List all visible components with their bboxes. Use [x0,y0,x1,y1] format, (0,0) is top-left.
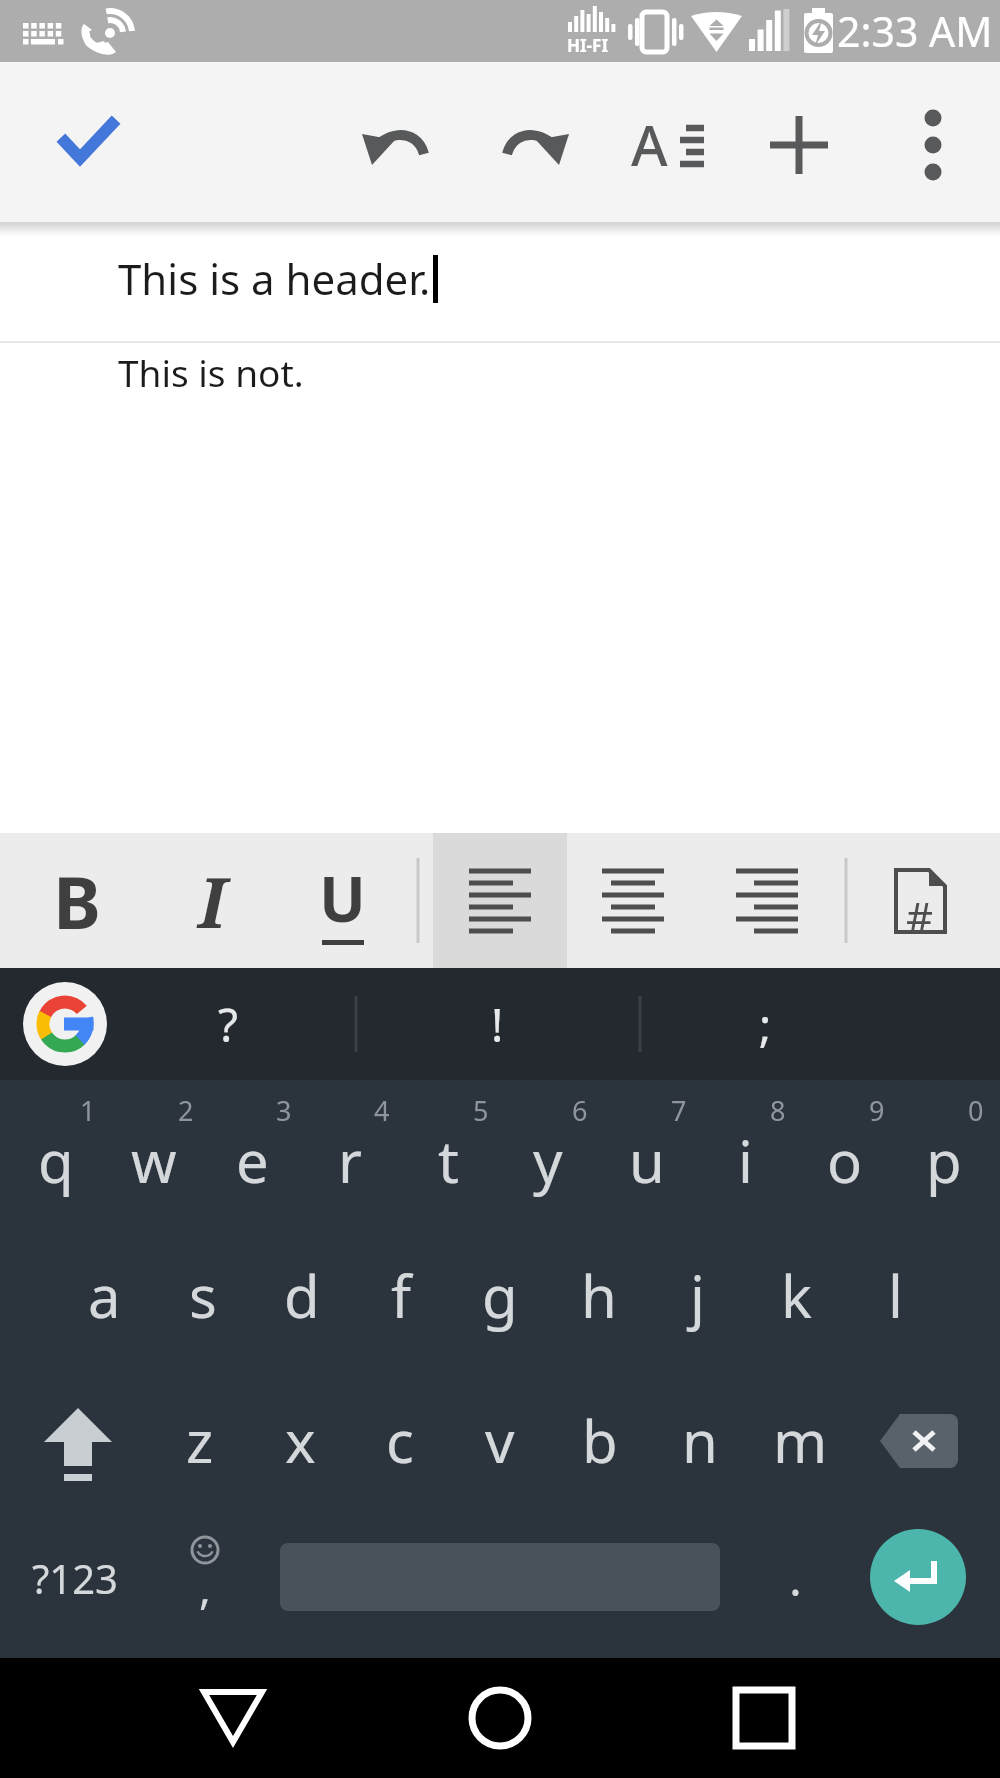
button[interactable]: ? [160,968,296,1080]
button[interactable]: t [399,1080,498,1240]
button[interactable]: v [450,1365,550,1515]
staticText: B [53,852,101,950]
button[interactable]: I [162,833,262,968]
staticText: ; [759,993,772,1056]
staticText: f [391,1256,411,1335]
staticText: y [533,1121,563,1200]
staticText: g [482,1256,518,1335]
button[interactable]: e [203,1080,301,1240]
button[interactable] [466,1684,534,1752]
button[interactable] [23,982,107,1066]
staticText: 3 [276,1092,292,1129]
staticText: j [690,1256,705,1335]
staticText: 2 [178,1092,194,1129]
staticText: , [199,1557,211,1617]
staticText: v [485,1401,515,1480]
button[interactable]: x [250,1365,350,1515]
button[interactable]: U [292,833,392,968]
button[interactable]: q [7,1080,105,1240]
button[interactable]: ! [429,968,565,1080]
staticText: This is not. [118,347,304,397]
button[interactable]: o [795,1080,894,1240]
button[interactable] [33,1402,123,1512]
staticText: 5 [473,1092,489,1129]
staticText: b [582,1401,618,1480]
staticText: o [827,1121,863,1200]
staticText: ! [491,993,504,1056]
staticText: A [631,106,668,182]
button[interactable] [732,1686,796,1750]
button[interactable]: , [170,1520,240,1635]
button[interactable]: ; [697,968,833,1080]
staticText: 7 [671,1092,687,1129]
button[interactable]: ?123 [10,1520,140,1635]
button[interactable] [900,100,966,190]
staticText: 6 [572,1092,588,1129]
button[interactable] [200,1688,270,1748]
staticText: d [284,1256,320,1335]
button[interactable]: l [846,1240,945,1350]
button[interactable]: z [150,1365,250,1515]
button[interactable]: d [252,1240,351,1350]
staticText: 8 [770,1092,786,1129]
button[interactable] [433,833,567,968]
staticText: ?123 [32,1551,118,1605]
button[interactable]: f [351,1240,450,1350]
button[interactable]: B [27,833,127,968]
staticText: ? [218,993,238,1056]
button[interactable]: g [450,1240,549,1350]
staticText: a [88,1256,121,1335]
button[interactable]: b [550,1365,650,1515]
staticText: s [189,1256,217,1335]
staticText: l [888,1256,903,1335]
staticText: This is a header. [118,250,431,307]
button[interactable]: m [750,1365,850,1515]
button[interactable] [764,107,834,182]
staticText: 0 [968,1092,984,1129]
staticText: h [581,1256,617,1335]
button[interactable]: a [55,1240,153,1350]
staticText: u [629,1121,665,1200]
button[interactable]: . [755,1520,835,1635]
button[interactable]: n [650,1365,750,1515]
button[interactable] [360,107,435,182]
button[interactable] [50,112,125,182]
staticText: t [438,1121,459,1200]
staticText: r [338,1121,362,1200]
staticText: c [386,1401,414,1480]
staticText: w [131,1121,177,1200]
staticText: m [773,1401,828,1480]
staticText: # [906,888,934,945]
button[interactable] [871,833,971,968]
staticText: 9 [869,1092,885,1129]
button[interactable]: y [498,1080,597,1240]
staticText: U [319,856,366,940]
button[interactable]: i [696,1080,795,1240]
staticText: z [186,1401,214,1480]
button[interactable]: h [549,1240,648,1350]
staticText: 1 [80,1092,96,1129]
button[interactable] [872,1402,967,1482]
staticText: 2:33 AM [837,3,993,59]
button[interactable]: k [747,1240,846,1350]
staticText: k [781,1256,812,1335]
staticText: . [789,1545,802,1610]
staticText: p [926,1121,962,1200]
staticText: 4 [374,1092,390,1129]
button[interactable] [870,1529,966,1625]
button[interactable]: s [153,1240,252,1350]
button[interactable]: r [301,1080,399,1240]
staticText: e [236,1121,269,1200]
staticText: q [38,1121,74,1200]
button[interactable]: p [894,1080,993,1240]
button[interactable]: c [350,1365,450,1515]
button[interactable]: w [105,1080,203,1240]
button[interactable]: j [648,1240,747,1350]
button[interactable]: A [635,104,713,184]
staticText: HI-FI [567,34,609,57]
staticText: I [198,853,227,948]
button[interactable] [496,107,571,182]
staticText: x [285,1401,316,1480]
button[interactable]: u [597,1080,696,1240]
